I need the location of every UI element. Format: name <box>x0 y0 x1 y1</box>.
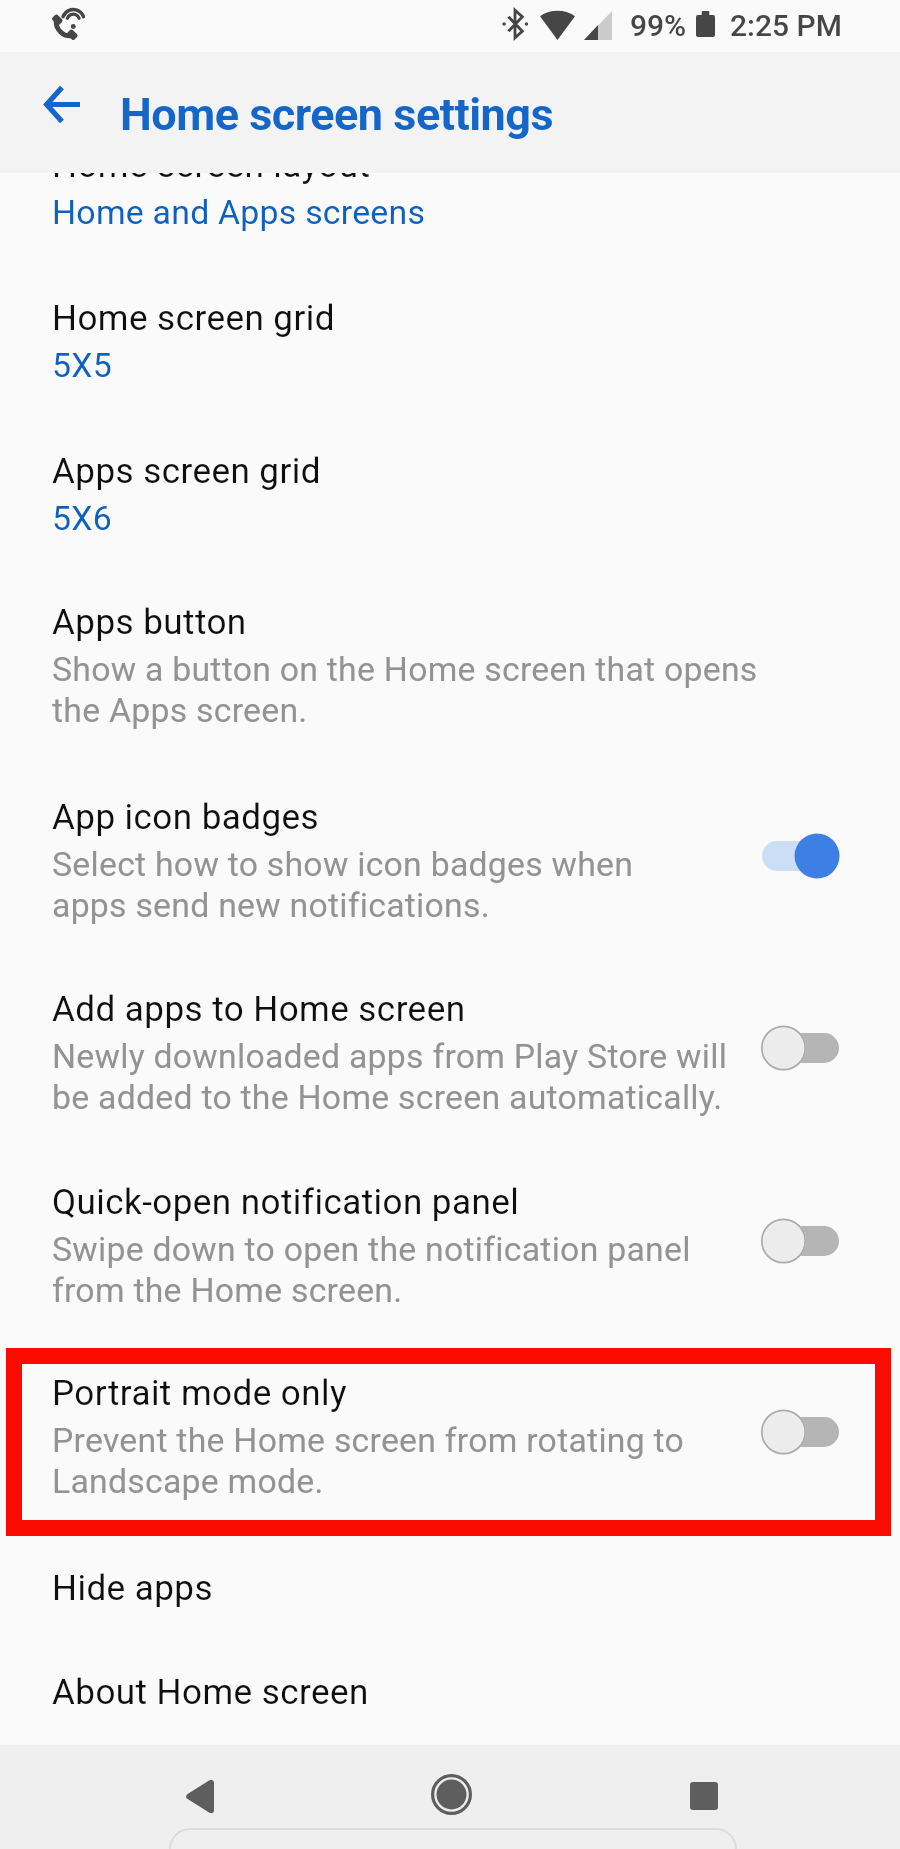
staticText: Show a button on the Home screen that op… <box>52 649 762 731</box>
button[interactable] <box>0 1128 900 1321</box>
button[interactable]: On <box>745 816 855 896</box>
staticText: 2:25 PM <box>730 7 842 43</box>
button[interactable] <box>0 1321 900 1514</box>
staticText: Portrait mode only <box>52 1373 742 1414</box>
staticText: Apps button <box>52 602 762 643</box>
staticText: Select how to show icon badges when apps… <box>52 844 692 926</box>
staticText: Add apps to Home screen <box>52 989 732 1030</box>
button[interactable] <box>0 173 900 242</box>
button[interactable] <box>0 242 900 395</box>
staticText: Home screen settings <box>120 88 554 141</box>
button[interactable]: Off <box>745 1392 855 1472</box>
staticText: Prevent the Home screen from rotating to… <box>52 1420 742 1502</box>
staticText: App icon badges <box>52 797 692 838</box>
staticText: Hide apps <box>52 1568 762 1609</box>
staticText: Newly downloaded apps from Play Store wi… <box>52 1036 732 1118</box>
button[interactable]: Off <box>745 1201 855 1281</box>
button[interactable] <box>0 548 900 742</box>
staticText: Apps screen grid <box>52 451 762 492</box>
staticText: Home and Apps screens <box>52 192 762 233</box>
button[interactable]: Back <box>22 64 102 144</box>
staticText: Quick-open notification panel <box>52 1182 732 1223</box>
staticText: Home screen grid <box>52 298 762 339</box>
button[interactable] <box>0 935 900 1128</box>
staticText: 99% <box>630 7 687 43</box>
staticText: Home screen layout <box>52 145 762 186</box>
staticText: About Home screen <box>52 1672 762 1713</box>
staticText: 5X5 <box>52 345 762 386</box>
button[interactable] <box>0 742 900 935</box>
staticText: 5X6 <box>52 498 762 539</box>
button[interactable]: Back <box>154 1751 244 1841</box>
button[interactable] <box>0 1630 900 1745</box>
button[interactable]: Off <box>745 1008 855 1088</box>
button[interactable]: Recent apps <box>659 1751 749 1841</box>
button[interactable] <box>0 395 900 548</box>
staticText: Swipe down to open the notification pane… <box>52 1229 732 1311</box>
button[interactable] <box>0 1536 900 1630</box>
button[interactable]: Home <box>406 1749 496 1839</box>
